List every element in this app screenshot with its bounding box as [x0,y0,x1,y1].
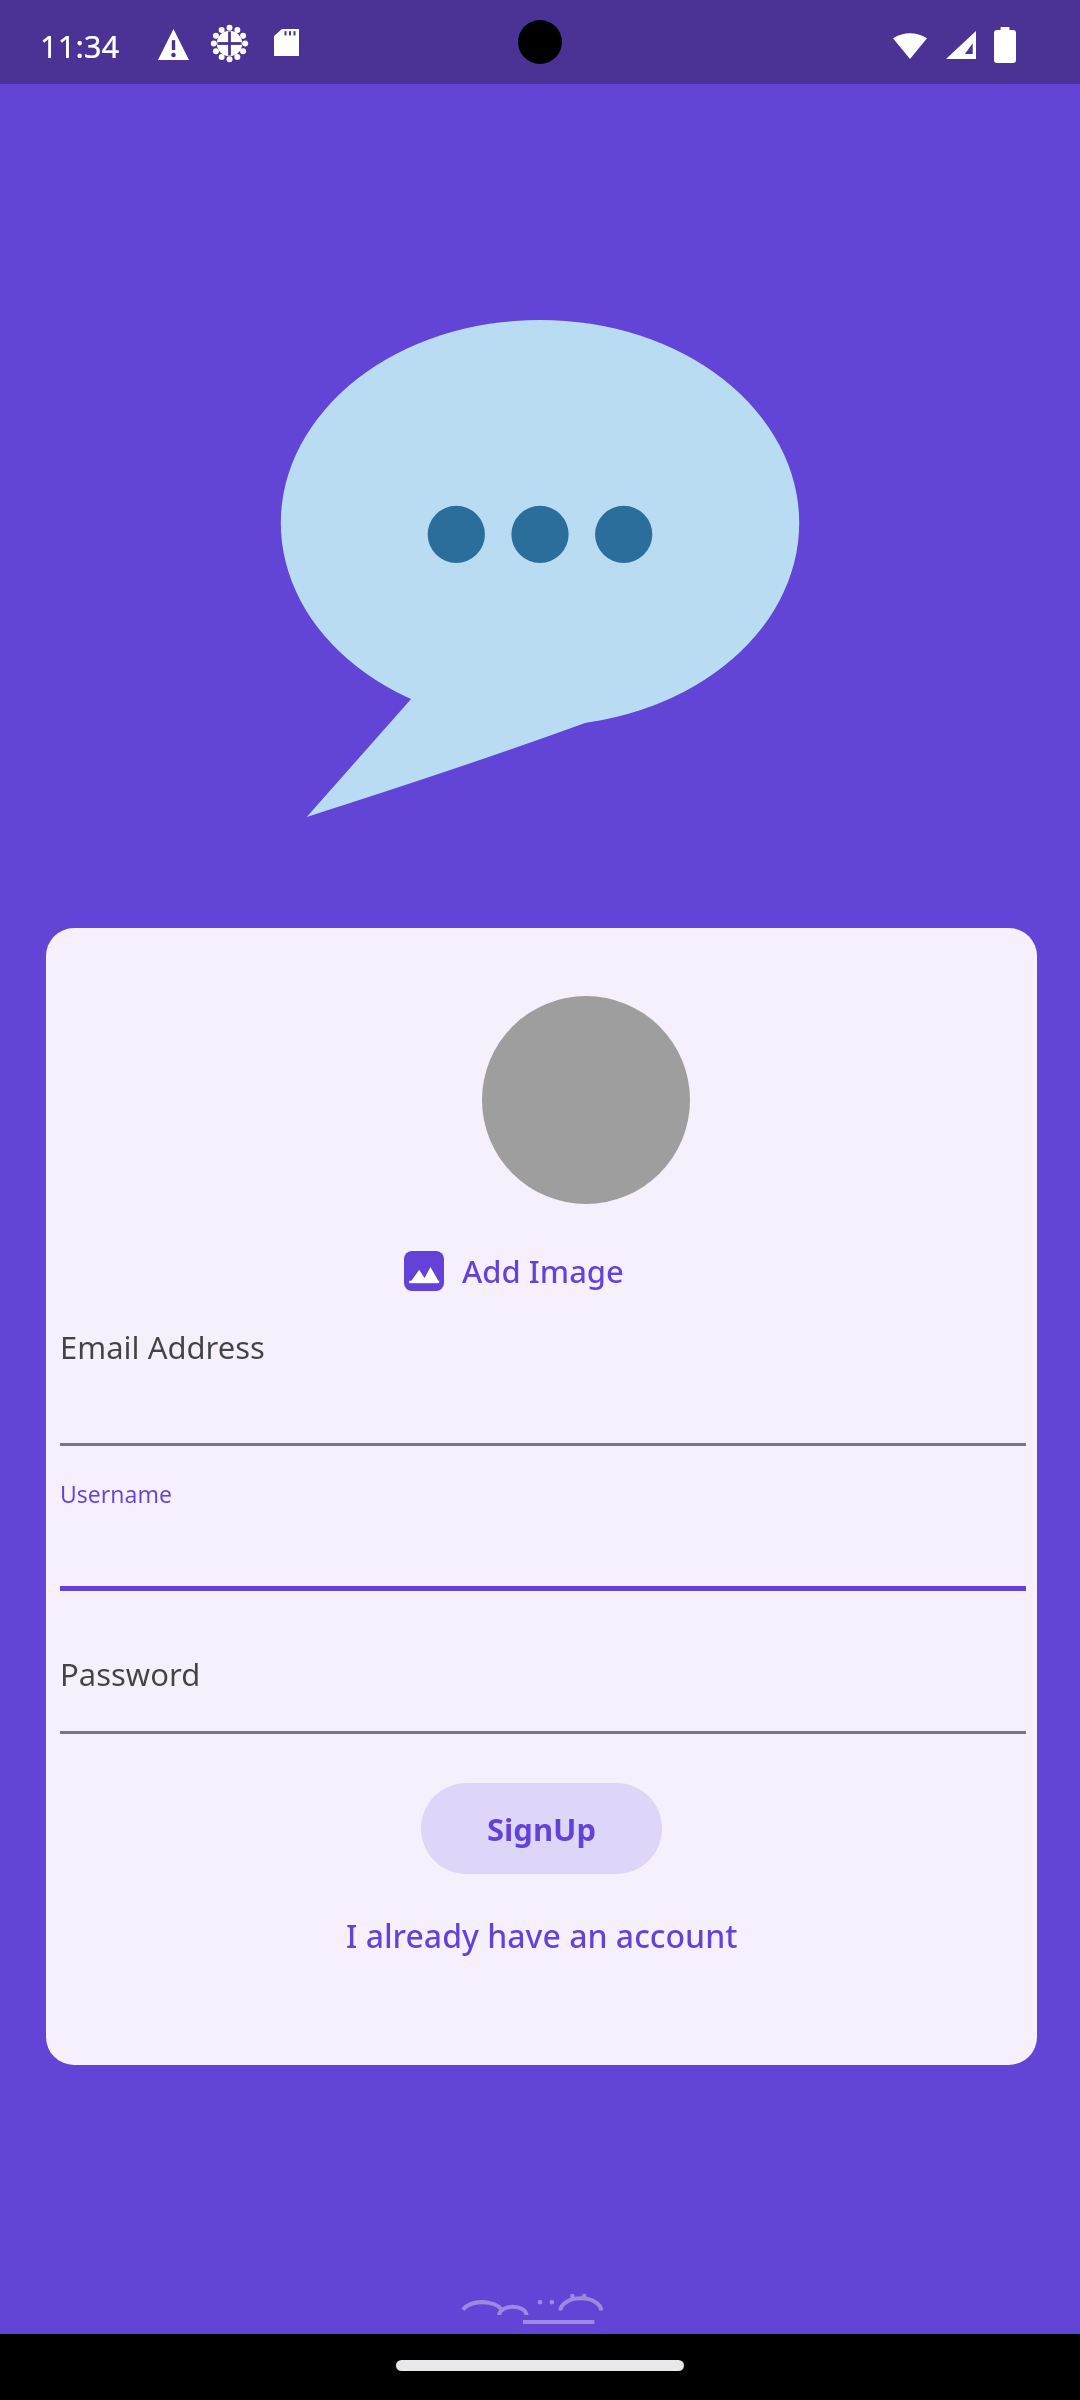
staticText: SignUp [487,1808,597,1850]
staticText: Email Address [60,1326,265,1368]
staticText: 11:34 [40,25,120,67]
staticText: Add Image [462,1250,624,1292]
button[interactable]: Add Image [398,1244,630,1298]
staticText: I already have an account [346,1914,738,1958]
button[interactable]: I already have an account [322,1900,762,1972]
staticText: mostaql.com [473,2328,608,2358]
button[interactable]: SignUp [421,1783,662,1874]
button[interactable]: Profile image [482,996,690,1204]
staticText: Username [60,1478,172,1509]
staticText: Password [60,1653,201,1695]
